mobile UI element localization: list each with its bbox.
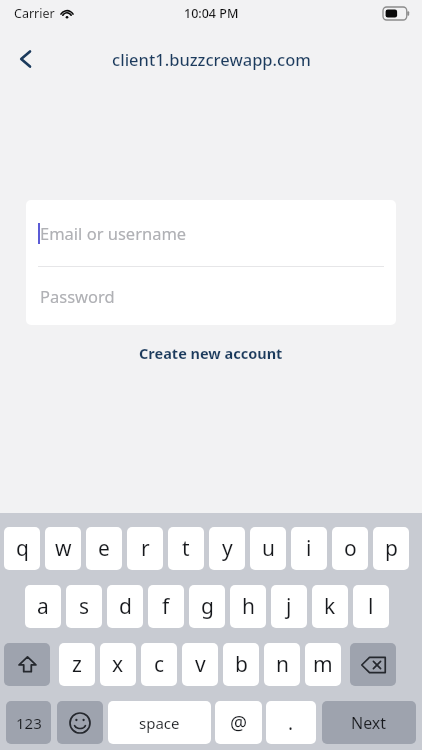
button[interactable]: a <box>25 585 61 628</box>
staticText: t <box>182 534 190 563</box>
staticText: a <box>37 592 49 621</box>
button[interactable]: Email or username <box>26 200 396 266</box>
staticText: b <box>235 650 248 679</box>
staticText: y <box>222 534 233 563</box>
staticText: g <box>201 592 214 621</box>
staticText: c <box>154 650 165 679</box>
button[interactable]: Shift <box>4 643 50 686</box>
staticText: space <box>139 713 180 733</box>
button[interactable]: Create new account <box>127 337 295 369</box>
button[interactable]: Password <box>26 267 396 325</box>
button[interactable]: z <box>59 643 95 686</box>
button[interactable]: j <box>271 585 307 628</box>
staticText: e <box>98 534 110 563</box>
staticText: 123 <box>16 713 42 733</box>
staticText: k <box>324 592 336 621</box>
button[interactable]: f <box>148 585 184 628</box>
staticText: client1.buzzcrewapp.com <box>112 48 311 70</box>
button[interactable]: b <box>223 643 259 686</box>
button[interactable]: o <box>332 527 368 570</box>
button[interactable]: p <box>373 527 409 570</box>
button[interactable]: Back <box>4 37 48 81</box>
staticText: i <box>306 534 312 563</box>
staticText: q <box>16 534 29 563</box>
button[interactable]: e <box>86 527 122 570</box>
staticText: Next <box>351 712 387 734</box>
button[interactable]: q <box>4 527 40 570</box>
button[interactable]: g <box>189 585 225 628</box>
staticText: m <box>313 650 333 679</box>
button[interactable]: 123 <box>6 701 51 744</box>
button[interactable]: n <box>264 643 300 686</box>
button[interactable]: c <box>141 643 177 686</box>
staticText: o <box>344 534 357 563</box>
button[interactable]: l <box>353 585 389 628</box>
button[interactable]: Backspace <box>350 643 396 686</box>
staticText: z <box>72 650 82 679</box>
button[interactable]: Emoji <box>57 701 103 744</box>
staticText: s <box>79 592 90 621</box>
staticText: d <box>119 592 132 621</box>
staticText: Carrier <box>14 5 55 22</box>
staticText: j <box>286 592 292 621</box>
button[interactable]: h <box>230 585 266 628</box>
button[interactable]: i <box>291 527 327 570</box>
staticText: n <box>276 650 289 679</box>
button[interactable]: v <box>182 643 218 686</box>
staticText: l <box>368 592 374 621</box>
staticText: h <box>242 592 255 621</box>
button[interactable]: s <box>66 585 102 628</box>
staticText: Create new account <box>139 343 283 363</box>
staticText: f <box>162 592 170 621</box>
staticText: w <box>55 534 72 563</box>
button[interactable]: w <box>45 527 81 570</box>
staticText: r <box>141 534 150 563</box>
button[interactable]: r <box>127 527 163 570</box>
button[interactable]: u <box>250 527 286 570</box>
button[interactable]: space <box>108 701 211 744</box>
staticText: Email or username <box>40 222 187 244</box>
button[interactable]: m <box>305 643 341 686</box>
staticText: u <box>262 534 275 563</box>
staticText: Password <box>40 285 115 307</box>
staticText: 10:04 PM <box>184 5 239 22</box>
staticText: v <box>195 650 206 679</box>
button[interactable]: d <box>107 585 143 628</box>
staticText: . <box>288 710 294 736</box>
button[interactable]: t <box>168 527 204 570</box>
staticText: p <box>385 534 398 563</box>
staticText: @ <box>230 710 248 736</box>
staticText: x <box>112 650 124 679</box>
button[interactable]: @ <box>215 701 262 744</box>
button[interactable]: x <box>100 643 136 686</box>
button[interactable]: k <box>312 585 348 628</box>
button[interactable]: . <box>266 701 316 744</box>
button[interactable]: y <box>209 527 245 570</box>
button[interactable]: Next <box>322 701 416 744</box>
